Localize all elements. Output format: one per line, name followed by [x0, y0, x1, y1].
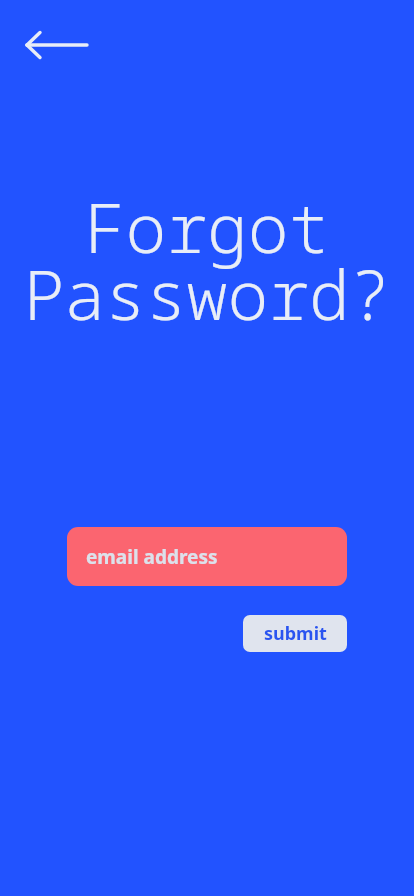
staticText: submit — [264, 621, 327, 646]
button[interactable]: email address — [67, 527, 347, 586]
staticText: Forgot Password? — [23, 180, 391, 340]
staticText: email address — [86, 544, 218, 570]
button[interactable]: Back — [18, 26, 96, 64]
button[interactable]: submit — [243, 615, 347, 652]
